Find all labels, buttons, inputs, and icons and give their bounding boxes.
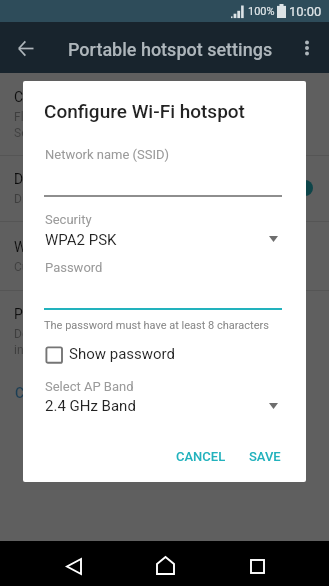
- staticText: Password: [45, 260, 103, 275]
- staticText: Wi-Fi hotspot auto off: [14, 239, 149, 255]
- staticText: SAVE: [249, 449, 281, 464]
- button[interactable]: More options: [291, 32, 323, 64]
- staticText: Disabled: [14, 192, 61, 206]
- staticText: Security: [45, 212, 92, 227]
- staticText: CANCEL: [176, 449, 226, 464]
- staticText: Portable hotspot: [14, 306, 119, 322]
- button[interactable]: Navigate up: [10, 32, 42, 64]
- button[interactable]: Home: [143, 543, 188, 586]
- staticText: 100%: [248, 5, 275, 18]
- button[interactable]: Connected devices: [15, 385, 134, 401]
- staticText: 10:00: [289, 4, 322, 19]
- staticText: 2.4 GHz Band: [45, 397, 136, 415]
- staticText: Devices connected: 0: [14, 327, 128, 341]
- staticText: Secured with WPA2 PSK: [14, 126, 144, 140]
- button[interactable]: Show password: [42, 341, 204, 365]
- button[interactable]: Select AP band: [261, 395, 285, 417]
- staticText: FlackBerry 9000: [14, 110, 101, 124]
- staticText: Portable hotspot settings: [68, 39, 273, 60]
- button[interactable]: Recent apps: [235, 544, 280, 586]
- staticText: Configure Wi-Fi hotspot: [14, 89, 160, 105]
- button[interactable]: Select security type: [261, 228, 285, 250]
- button[interactable]: SAVE: [240, 438, 290, 474]
- staticText: Currently off: [14, 260, 81, 274]
- staticText: Connected devices: [15, 385, 134, 401]
- staticText: The password must have at least 8 charac…: [44, 319, 269, 332]
- button[interactable]: CANCEL: [165, 438, 237, 474]
- staticText: inactive: [14, 343, 56, 357]
- staticText: Select AP Band: [45, 379, 134, 394]
- staticText: WPA2 PSK: [45, 231, 117, 249]
- button[interactable]: Back: [51, 544, 96, 586]
- staticText: Data usage limit: [14, 171, 115, 187]
- staticText: Show password: [69, 345, 176, 363]
- staticText: Configure Wi-Fi hotspot: [44, 100, 245, 122]
- staticText: Network name (SSID): [45, 147, 170, 162]
